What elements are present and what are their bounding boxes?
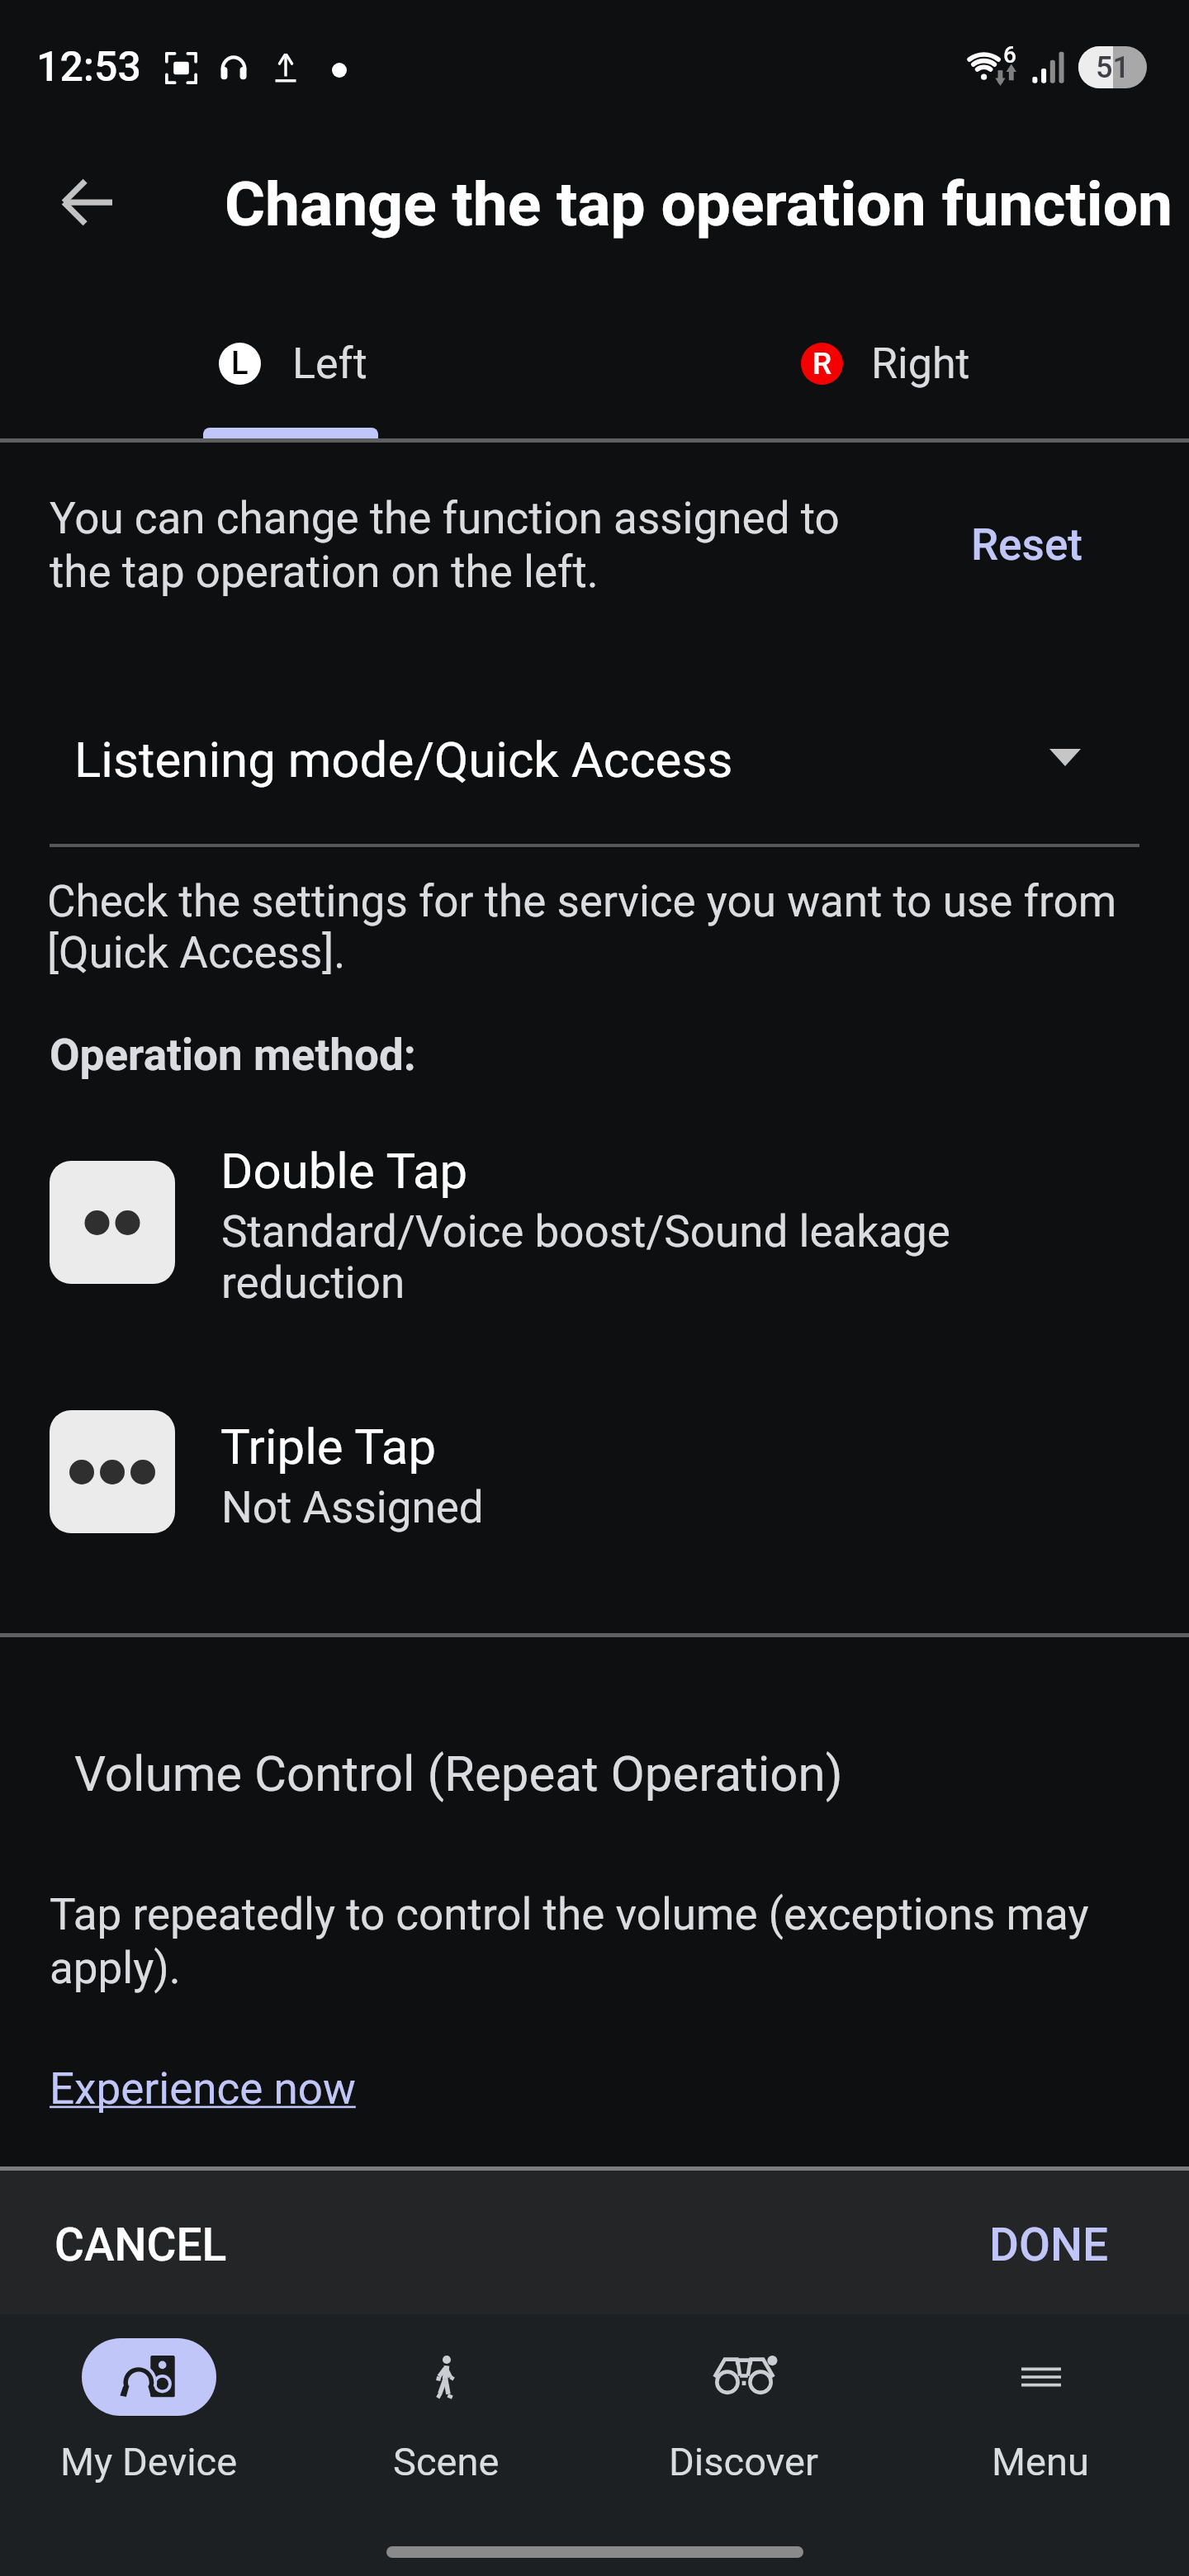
staticText: Operation method:	[50, 1030, 416, 1081]
staticText: Triple Tap	[220, 1418, 437, 1475]
button[interactable]: Back	[33, 149, 140, 256]
button[interactable]: Experience now	[50, 2063, 356, 2114]
staticText: Listening mode/Quick Access	[74, 731, 733, 788]
staticText: L	[231, 345, 249, 382]
button[interactable]: R	[594, 289, 1189, 438]
staticText: 51	[1096, 50, 1130, 85]
staticText: Reset	[971, 519, 1083, 571]
staticText: Discover	[669, 2439, 818, 2484]
button[interactable]: My Device	[0, 2314, 297, 2504]
button[interactable]: DONE	[968, 2200, 1130, 2290]
button[interactable]: Double Tap	[0, 1144, 1189, 1301]
staticText: Check the settings for the service you w…	[47, 876, 1117, 978]
button[interactable]: L	[0, 289, 594, 438]
staticText: You can change the function assigned to …	[50, 493, 840, 598]
button[interactable]: Scene	[297, 2314, 594, 2504]
staticText: Change the tap operation function	[225, 168, 1173, 240]
staticText: 12:53	[36, 43, 141, 92]
staticText: Right	[871, 339, 970, 389]
staticText: DONE	[989, 2218, 1109, 2271]
staticText: Menu	[992, 2439, 1089, 2484]
staticText: Experience now	[50, 2063, 356, 2114]
staticText: R	[812, 346, 832, 381]
staticText: 6	[1003, 41, 1016, 69]
button[interactable]: Reset	[950, 506, 1105, 584]
staticText: Double Tap	[220, 1142, 468, 1200]
staticText: Left	[292, 339, 367, 389]
button[interactable]: Triple Tap	[0, 1394, 1189, 1551]
staticText: Tap repeatedly to control the volume (ex…	[50, 1889, 1089, 1994]
staticText: My Device	[60, 2439, 238, 2484]
staticText: Not Assigned	[221, 1482, 484, 1533]
staticText: Scene	[393, 2439, 500, 2484]
staticText: CANCEL	[54, 2218, 227, 2271]
staticText: Standard/Voice boost/Sound leakage reduc…	[221, 1206, 950, 1309]
staticText: Volume Control (Repeat Operation)	[74, 1745, 843, 1802]
button[interactable]: Listening mode/Quick Access	[0, 706, 1189, 813]
button[interactable]: Menu	[892, 2314, 1189, 2504]
button[interactable]: CANCEL	[33, 2200, 249, 2290]
button[interactable]: Discover	[594, 2314, 892, 2504]
